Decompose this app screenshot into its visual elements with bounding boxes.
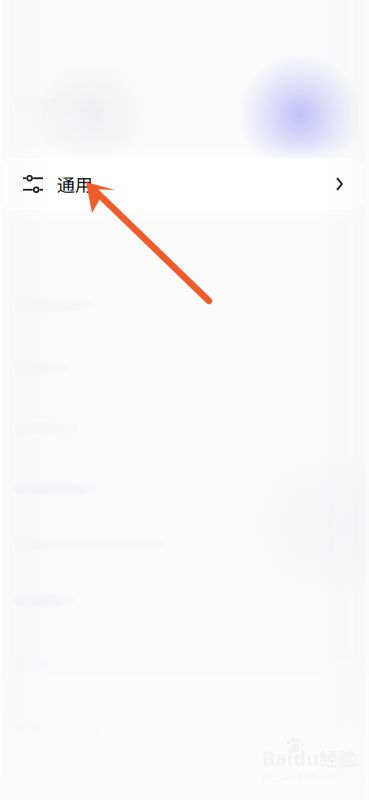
staticText: Baidu — [262, 744, 319, 771]
button[interactable]: 通用 — [5, 158, 364, 210]
staticText: 通用 — [57, 171, 93, 197]
staticText: 经验 — [319, 744, 357, 771]
